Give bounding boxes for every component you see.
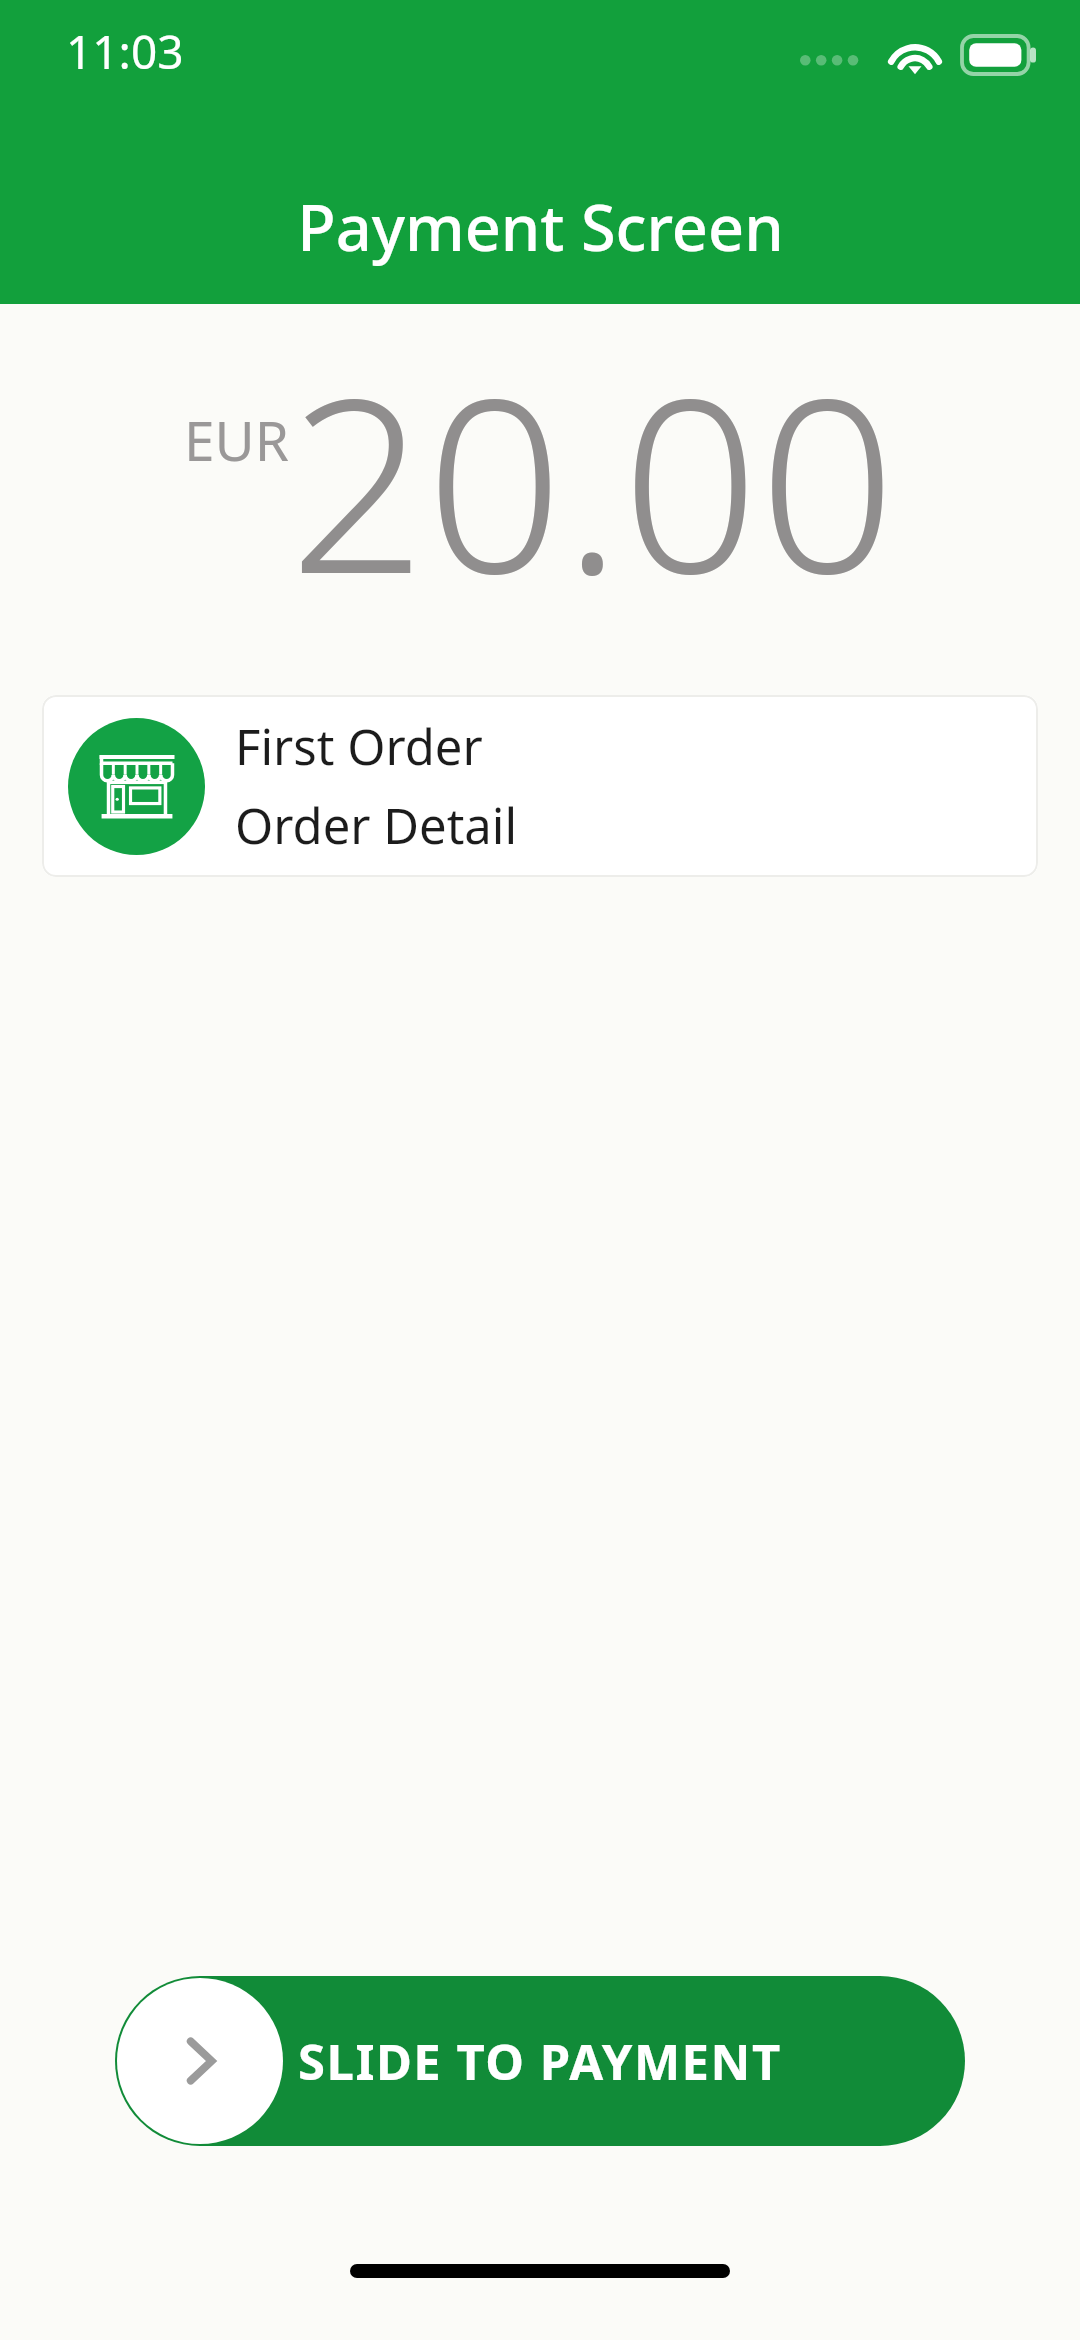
staticText: 11:03	[66, 20, 184, 83]
other: Slide to payment	[117, 1978, 283, 2144]
staticText: EUR	[184, 402, 289, 477]
staticText: First Order	[235, 713, 483, 780]
staticText: Payment Screen	[297, 184, 784, 270]
button[interactable]: First Order	[42, 695, 1038, 877]
staticText: Order Detail	[235, 792, 518, 859]
staticText: SLIDE TO PAYMENT	[298, 2028, 782, 2095]
staticText: 20.00	[289, 316, 896, 643]
button[interactable]: SLIDE TO PAYMENT	[115, 1976, 965, 2146]
